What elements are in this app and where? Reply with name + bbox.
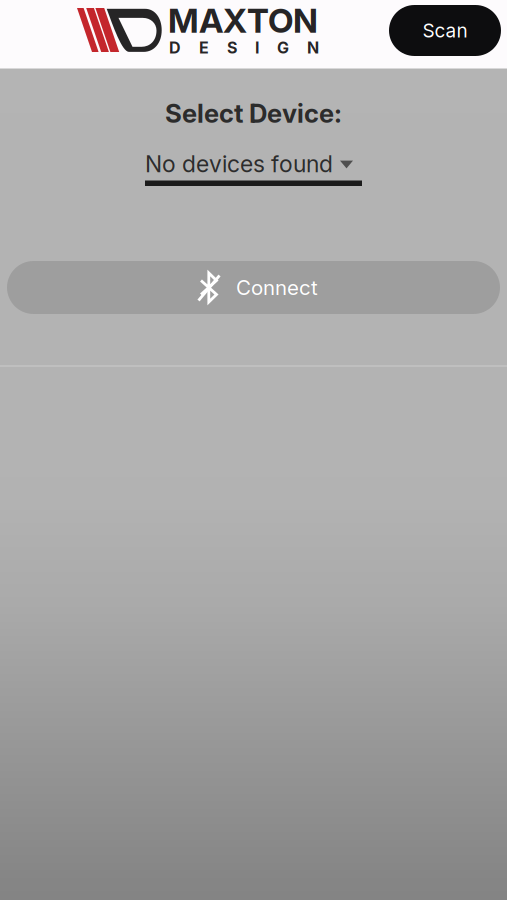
staticText: MAXTON (168, 0, 318, 41)
button[interactable]: No devices found (145, 147, 362, 186)
staticText: Scan (422, 19, 467, 42)
staticText: DESIGN (169, 38, 319, 57)
button[interactable]: Connect (7, 261, 500, 314)
staticText: Select Device: (165, 98, 342, 129)
button[interactable]: Scan (389, 5, 501, 56)
staticText: No devices found (145, 150, 333, 178)
staticText: Connect (236, 275, 318, 300)
